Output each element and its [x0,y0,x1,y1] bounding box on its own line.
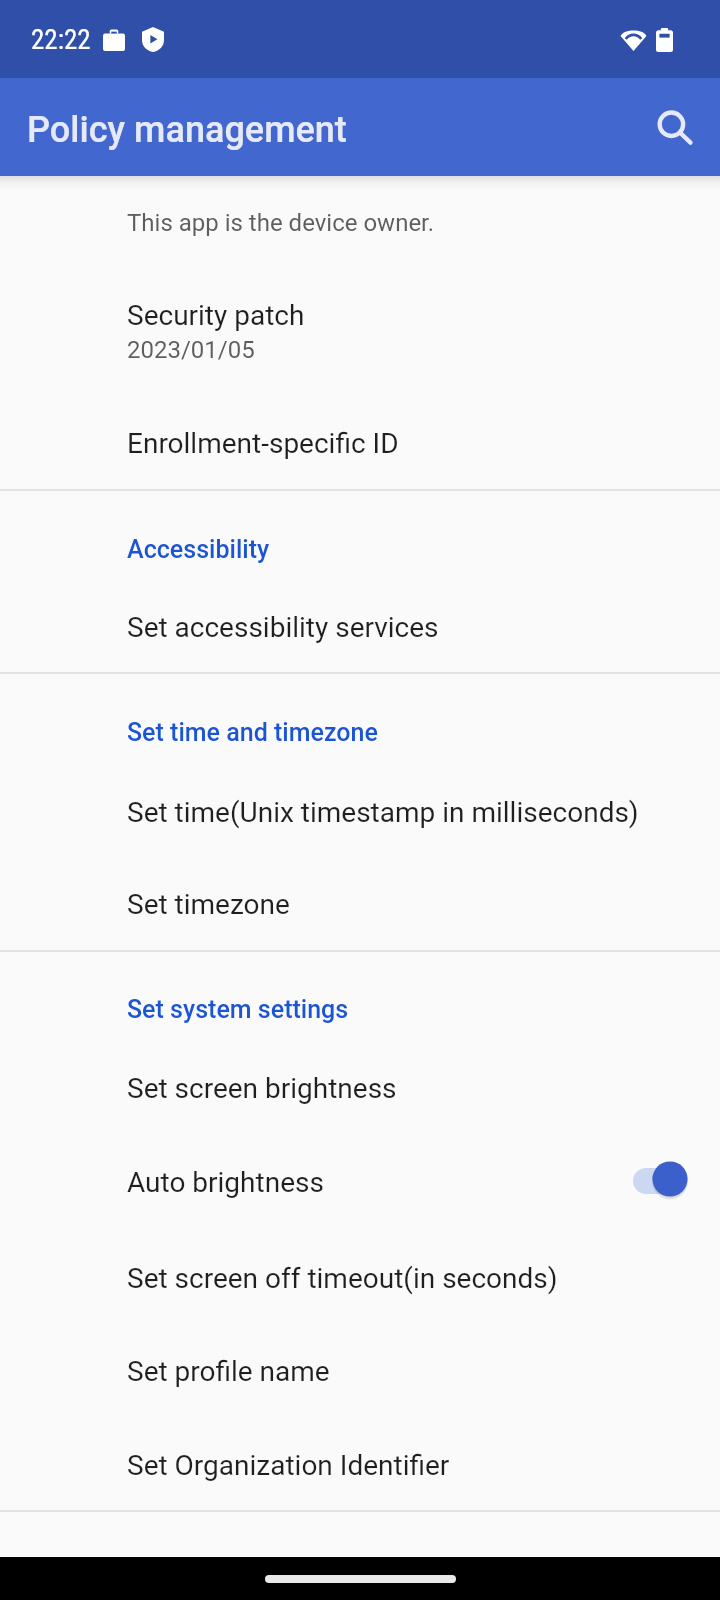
other: Work profile [103,29,125,51]
staticText: Security patch [127,299,305,332]
staticText: Set timezone [127,888,290,921]
button[interactable]: Enrollment-specific ID [0,397,720,489]
button[interactable]: Set profile name [0,1323,720,1417]
staticText: Set time and timezone [127,718,378,747]
button[interactable]: Auto brightness, on [632,1156,704,1208]
staticText: Accessibility [127,535,270,564]
staticText: Set profile name [127,1355,330,1388]
button[interactable]: Set screen off timeout(in seconds) [0,1229,720,1323]
button[interactable]: Search [648,102,704,158]
button[interactable]: Set accessibility services [0,580,720,672]
staticText: Set system settings [127,995,349,1024]
staticText: 2023/01/05 [127,336,255,364]
staticText: Set Organization Identifier [127,1449,450,1482]
button[interactable]: Set time(Unix timestamp in milliseconds) [0,763,720,857]
staticText: Enrollment-specific ID [127,427,399,460]
staticText: This app is the device owner. [127,209,435,237]
staticText: Auto brightness [127,1166,324,1199]
staticText: Set screen brightness [127,1072,397,1105]
staticText: Policy management [27,109,347,151]
button[interactable]: Set Organization Identifier [0,1417,720,1511]
other: Device protected [142,27,164,52]
staticText: 22:22 [31,24,91,56]
button[interactable]: Set screen brightness [0,1041,720,1135]
button[interactable]: Auto brightness [0,1135,720,1229]
staticText: Set time(Unix timestamp in milliseconds) [127,796,639,829]
other: Battery [656,28,673,52]
other: Wi-Fi [620,26,647,51]
button[interactable]: Set timezone [0,857,720,950]
staticText: Set screen off timeout(in seconds) [127,1262,558,1295]
button[interactable]: Security patch [0,270,720,397]
button[interactable]: This app is the device owner. [0,176,720,270]
staticText: Set accessibility services [127,611,439,644]
